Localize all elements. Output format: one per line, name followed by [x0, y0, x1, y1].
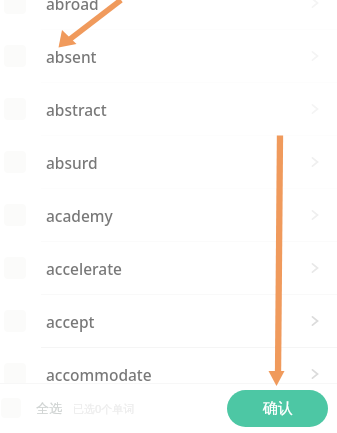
button[interactable]: academy	[0, 189, 337, 241]
staticText: academy	[46, 205, 113, 226]
staticText: accelerate	[46, 258, 123, 279]
staticText: abroad	[46, 0, 99, 14]
staticText: abstract	[46, 99, 107, 120]
button[interactable]: accommodate	[0, 348, 337, 400]
button[interactable]: abroad	[0, 0, 337, 29]
button[interactable]: accelerate	[0, 242, 337, 294]
button[interactable]: 确认	[227, 390, 328, 427]
button[interactable]: abstract	[0, 83, 337, 135]
staticText: absent	[46, 46, 97, 67]
button[interactable]: accept	[0, 295, 337, 347]
staticText: 确认	[263, 399, 293, 418]
staticText: absurd	[46, 152, 98, 173]
staticText: accommodate	[46, 364, 152, 385]
button[interactable]: absurd	[0, 136, 337, 188]
staticText: 已选0个单词	[73, 401, 135, 416]
staticText: 全选	[36, 400, 62, 416]
button[interactable]: absent	[0, 30, 337, 82]
staticText: accept	[46, 311, 95, 332]
